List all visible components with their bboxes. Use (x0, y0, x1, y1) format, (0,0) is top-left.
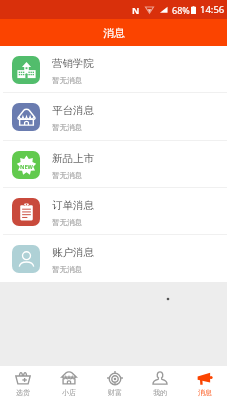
staticText: 暂无消息 (52, 171, 82, 180)
button[interactable]: 财富 (92, 366, 137, 401)
staticText: 14:56 (200, 3, 225, 16)
staticText: 小店 (62, 388, 76, 397)
button[interactable]: 营销学院 (0, 46, 227, 93)
button[interactable]: 平台消息 (0, 93, 227, 141)
staticText: 选货 (16, 388, 30, 397)
staticText: 暂无消息 (52, 218, 82, 227)
staticText: NEW (20, 163, 33, 170)
staticText: 暂无消息 (52, 265, 82, 274)
staticText: 消息 (103, 26, 125, 40)
button[interactable]: NEW (0, 141, 227, 188)
staticText: 新品上市 (52, 152, 94, 165)
staticText: N (132, 4, 140, 16)
staticText: 财富 (108, 388, 122, 397)
staticText: 平台消息 (52, 104, 94, 117)
button[interactable]: 账户消息 (0, 235, 227, 282)
staticText: 消息 (198, 388, 212, 397)
staticText: 营销学院 (52, 57, 94, 70)
staticText: 暂无消息 (52, 76, 82, 85)
staticText: 账户消息 (52, 246, 94, 259)
staticText: 我的 (153, 388, 167, 397)
button[interactable]: 我的 (137, 366, 182, 401)
staticText: 暂无消息 (52, 123, 82, 132)
staticText: 68% (172, 4, 190, 16)
button[interactable]: 消息 (182, 366, 227, 401)
button[interactable]: 选货 (0, 366, 46, 401)
button[interactable]: 小店 (46, 366, 92, 401)
button[interactable]: 订单消息 (0, 188, 227, 235)
staticText: 订单消息 (52, 199, 94, 212)
